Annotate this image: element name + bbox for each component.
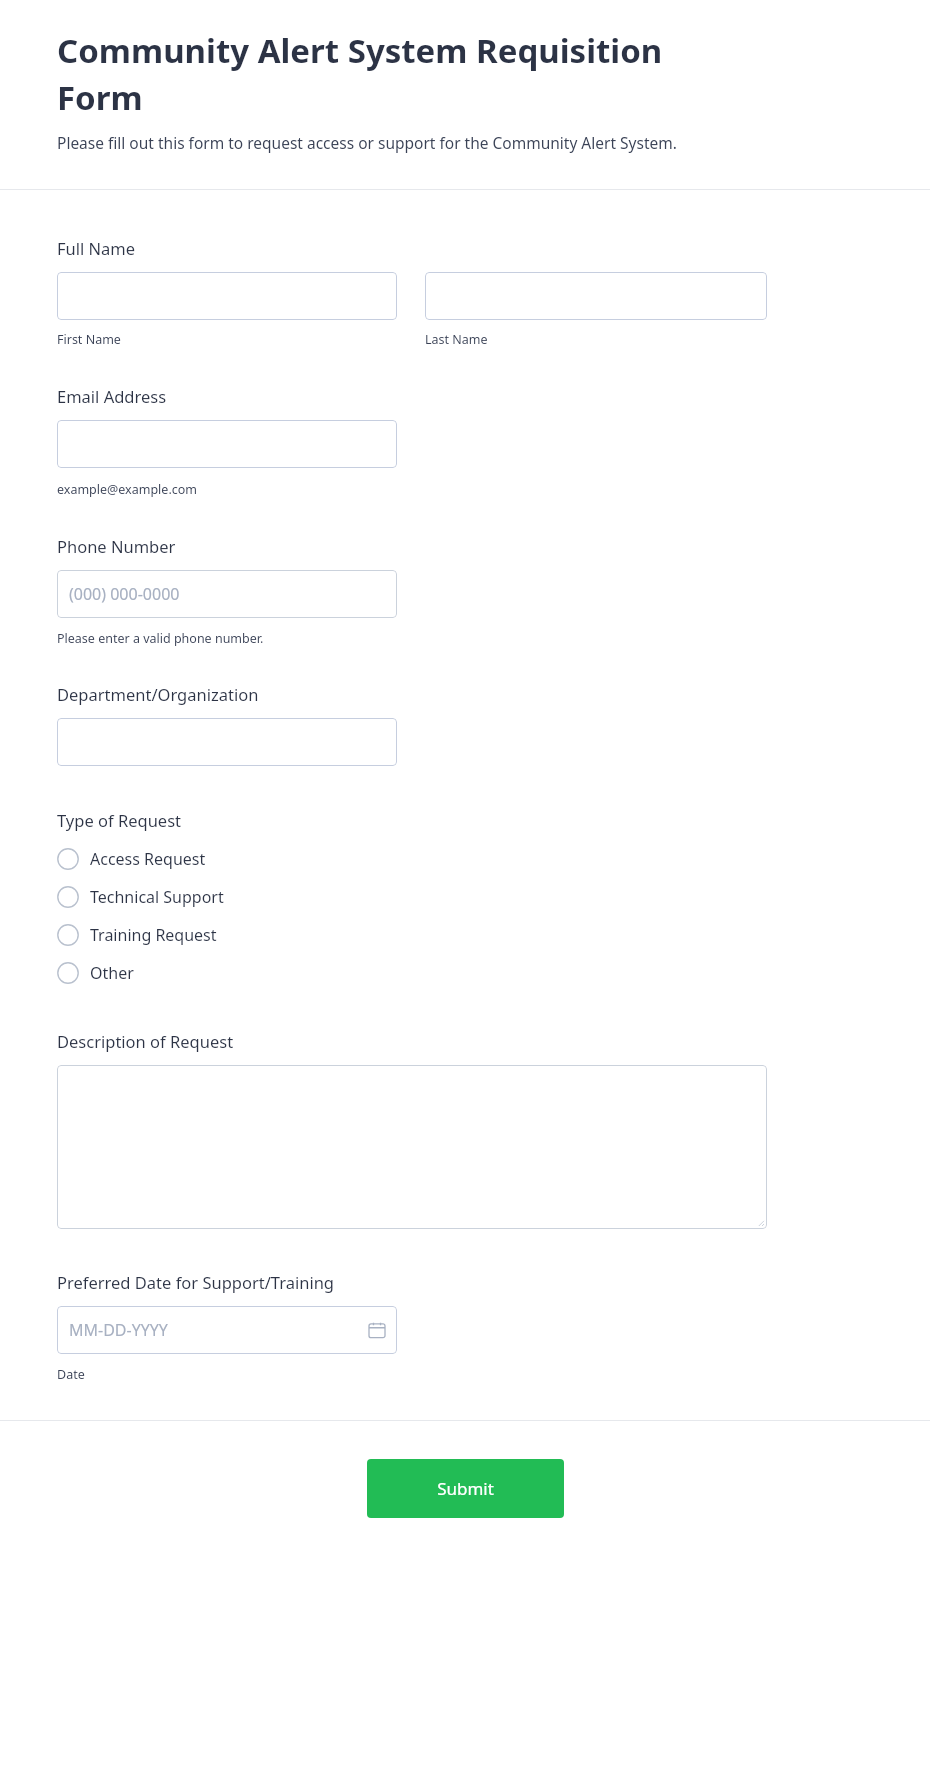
staticText: Other [90,962,134,984]
button[interactable]: Training Request [0,916,930,954]
staticText: Full Name [57,237,136,259]
button[interactable]: Access Request [0,840,930,878]
button[interactable]: Other [0,954,930,992]
staticText: Community Alert System Requisition Form [57,28,730,120]
button[interactable]: Technical Support [0,878,930,916]
staticText: example@example.com [57,481,197,498]
staticText: Please fill out this form to request acc… [57,132,677,153]
button[interactable]: MM-DD-YYYY [57,1306,397,1354]
staticText: Email Address [57,385,167,407]
staticText: Description of Request [57,1030,234,1052]
button[interactable]: (000) 000-0000 [57,570,397,618]
staticText: Please enter a valid phone number. [57,630,264,647]
staticText: Technical Support [90,886,224,908]
staticText: First Name [57,331,121,348]
button[interactable] [425,272,767,320]
staticText: Access Request [90,848,206,870]
staticText: Type of Request [57,809,182,831]
staticText: Phone Number [57,535,176,557]
button[interactable] [57,718,397,766]
staticText: MM-DD-YYYY [69,1319,168,1341]
button[interactable] [57,420,397,468]
staticText: Training Request [90,924,217,946]
staticText: Department/Organization [57,683,259,705]
staticText: (000) 000-0000 [69,583,180,605]
other: Open calendar [369,1322,385,1338]
staticText: Last Name [425,331,488,348]
staticText: Date [57,1366,85,1383]
button[interactable]: Submit [367,1459,564,1518]
button[interactable] [57,272,397,320]
staticText: Preferred Date for Support/Training [57,1271,335,1293]
button[interactable] [57,1065,767,1229]
staticText: Submit [437,1477,494,1500]
